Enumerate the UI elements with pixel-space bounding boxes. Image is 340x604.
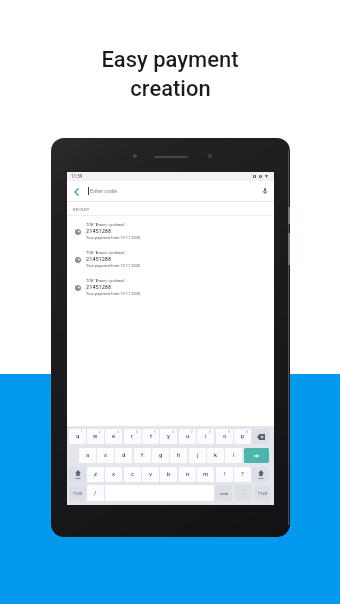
button[interactable]: i (197, 429, 214, 444)
staticText: RECENT (73, 207, 90, 212)
staticText: 1 (81, 430, 83, 433)
staticText: a (86, 452, 90, 459)
staticText: f (141, 452, 144, 459)
button[interactable]: y (160, 429, 177, 444)
staticText: ?123 (73, 491, 83, 496)
button[interactable]: t (142, 429, 159, 444)
staticText: 5 (154, 430, 156, 433)
staticText: o (223, 433, 227, 440)
button[interactable]: p (234, 429, 251, 444)
staticText: . (243, 490, 245, 497)
button[interactable]: r (124, 429, 141, 444)
staticText: Your payment from 19.11.2020 (86, 263, 141, 268)
staticText: i (205, 433, 207, 440)
button[interactable]: Shift (69, 467, 86, 482)
staticText: 21451288 (86, 256, 112, 262)
staticText: 9 (228, 430, 230, 433)
button[interactable]: ?123 (254, 485, 271, 501)
button[interactable]: Shift (252, 467, 269, 482)
staticText: b (167, 471, 171, 478)
button[interactable]: ?123 (69, 485, 86, 501)
button[interactable]: h (170, 448, 187, 463)
staticText: ТОВ "Бізнес і робимо" (86, 278, 126, 283)
button[interactable]: Voice input (260, 186, 270, 196)
staticText: x (112, 471, 115, 478)
staticText: Your payment from 19.11.2020 (86, 291, 141, 296)
button[interactable]: k (207, 448, 224, 463)
staticText: y (167, 433, 170, 440)
staticText: 7 (191, 430, 193, 433)
staticText: n (186, 471, 190, 478)
button[interactable]: o (216, 429, 233, 444)
staticText: 21451288 (86, 284, 112, 290)
staticText: creation (130, 76, 211, 102)
button[interactable]: q (69, 429, 86, 444)
button[interactable]: ТОВ "Бізнес і робимо" (67, 218, 274, 246)
staticText: m (203, 471, 209, 478)
staticText: p (241, 433, 245, 440)
staticText: Easy payment (101, 47, 239, 73)
button[interactable]: w (87, 429, 104, 444)
staticText: 8 (209, 430, 211, 433)
staticText: 11:39 (71, 174, 83, 179)
staticText: ! (224, 471, 226, 478)
button[interactable]: b (160, 467, 177, 482)
staticText: z (94, 471, 97, 478)
button[interactable]: ТОВ "Бізнес і робимо" (67, 274, 274, 302)
button[interactable]: n (179, 467, 196, 482)
button[interactable]: d (115, 448, 132, 463)
staticText: w (93, 433, 98, 440)
staticText: 2 (99, 430, 101, 433)
staticText: l (233, 452, 235, 459)
staticText: 6 (172, 430, 174, 433)
button[interactable]: ! (216, 467, 233, 482)
button[interactable]: / (87, 485, 104, 501)
staticText: 0 (246, 430, 248, 433)
button[interactable]: ? (234, 467, 251, 482)
staticText: v (149, 471, 152, 478)
button[interactable]: Enter (244, 448, 269, 463)
staticText: 21451288 (86, 228, 112, 234)
button[interactable]: u (179, 429, 196, 444)
button[interactable]: s (97, 448, 114, 463)
staticText: s (104, 452, 108, 459)
button[interactable]: m (197, 467, 214, 482)
button[interactable]: v (142, 467, 159, 482)
staticText: 3 (117, 430, 119, 433)
staticText: .com (219, 491, 229, 496)
staticText: ? (241, 471, 244, 478)
button[interactable]: Back (71, 186, 82, 197)
button[interactable]: Backspace (252, 429, 269, 444)
button[interactable]: g (152, 448, 169, 463)
staticText: 4 (136, 430, 138, 433)
staticText: Your payment from 19.11.2020 (86, 235, 141, 240)
button[interactable]: a (79, 448, 96, 463)
staticText: t (150, 433, 152, 440)
button[interactable]: .com (215, 485, 232, 501)
button[interactable]: e (105, 429, 122, 444)
staticText: / (94, 490, 97, 497)
button[interactable]: x (105, 467, 122, 482)
staticText: h (177, 452, 181, 459)
button[interactable]: l (225, 448, 242, 463)
staticText: ТОВ "Бізнес і робимо" (86, 250, 126, 255)
staticText: g (159, 452, 163, 459)
button[interactable]: f (134, 448, 151, 463)
staticText: e (112, 433, 116, 440)
staticText: ?123 (258, 491, 268, 496)
staticText: r (131, 433, 134, 440)
staticText: Enter code (90, 188, 117, 195)
button[interactable]: z (87, 467, 104, 482)
staticText: ТОВ "Бізнес і робимо" (86, 222, 126, 227)
staticText: k (214, 452, 218, 459)
staticText: c (131, 471, 135, 478)
staticText: j (197, 452, 199, 459)
button[interactable]: ТОВ "Бізнес і робимо" (67, 246, 274, 274)
button[interactable]: c (124, 467, 141, 482)
staticText: d (122, 452, 126, 459)
button[interactable]: j (189, 448, 206, 463)
staticText: q (76, 433, 80, 440)
staticText: u (186, 433, 190, 440)
